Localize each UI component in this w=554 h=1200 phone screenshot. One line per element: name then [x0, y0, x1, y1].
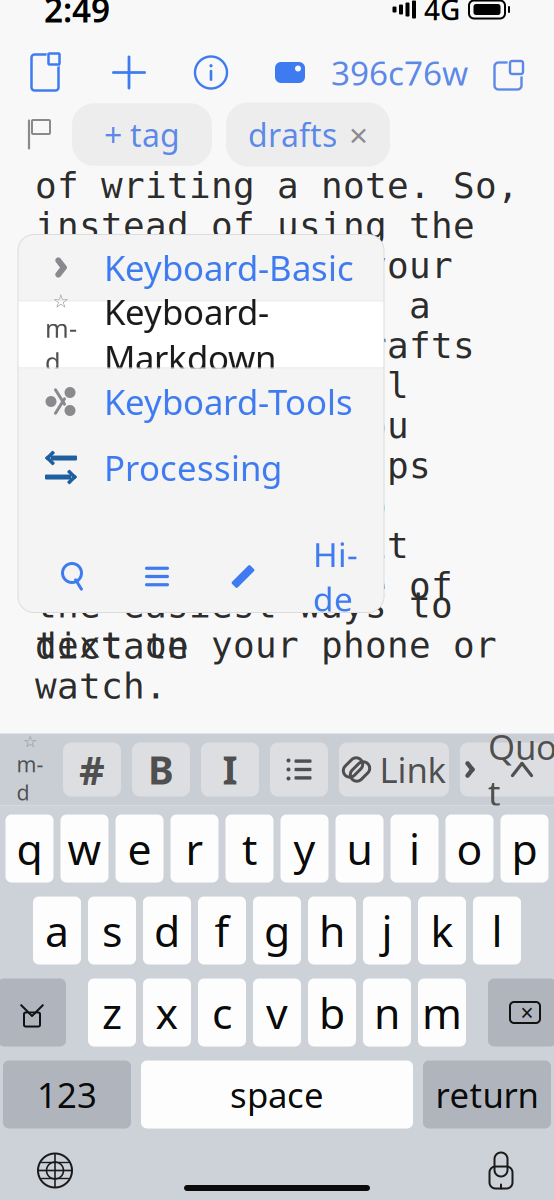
button[interactable]: Heading: [63, 742, 121, 796]
button[interactable]: return: [423, 1060, 551, 1128]
button[interactable]: z: [88, 978, 136, 1046]
staticText: traps: [35, 445, 431, 486]
button[interactable]: Add: [102, 46, 156, 98]
button[interactable]: Quote: [460, 742, 554, 796]
button[interactable]: x: [143, 978, 191, 1046]
staticText: Hide: [313, 532, 358, 621]
button[interactable]: ☆: [18, 301, 384, 368]
button[interactable]: f: [198, 896, 246, 964]
button[interactable]: e: [115, 814, 163, 882]
staticText: g: [264, 902, 290, 959]
staticText: a: [45, 902, 69, 959]
button[interactable]: space: [141, 1060, 413, 1128]
button[interactable]: g: [253, 896, 301, 964]
button[interactable]: m: [418, 978, 466, 1046]
staticText: z: [102, 984, 122, 1041]
button[interactable]: List: [114, 548, 200, 604]
staticText: n: [374, 984, 400, 1041]
button[interactable]: Bulleted list: [270, 742, 328, 796]
button[interactable]: Dictate: [484, 1143, 554, 1197]
staticText: d: [154, 902, 180, 959]
button[interactable]: p: [500, 814, 548, 882]
button[interactable]: y: [280, 814, 328, 882]
button[interactable]: Flag: [20, 117, 58, 151]
button[interactable]: c: [198, 978, 246, 1046]
staticText: th it: [35, 525, 409, 566]
staticText: on your: [35, 245, 453, 286]
staticText: ×: [520, 997, 533, 1027]
staticText: e: [127, 820, 151, 877]
button[interactable]: Tags: [264, 46, 316, 98]
staticText: text on your phone or watch.: [35, 625, 497, 706]
button[interactable]: i: [390, 814, 438, 882]
button[interactable]: r: [170, 814, 218, 882]
button[interactable]: Delete: [488, 978, 554, 1046]
button[interactable]: + tag: [72, 103, 212, 166]
staticText: v: [266, 984, 288, 1041]
staticText: space: [230, 1071, 324, 1117]
staticText: Processing: [104, 444, 282, 490]
staticText: j: [381, 902, 392, 959]
staticText: I: [222, 744, 237, 795]
staticText: + tag: [104, 113, 180, 156]
staticText: 2:49: [44, 0, 110, 32]
button[interactable]: Keyboard-Basic: [18, 234, 384, 301]
button[interactable]: b: [308, 978, 356, 1046]
staticText: open a: [35, 285, 431, 326]
staticText: return: [435, 1071, 538, 1117]
button[interactable]: Link: [339, 742, 449, 796]
button[interactable]: Italic: [201, 742, 259, 796]
staticText: c: [212, 984, 232, 1041]
staticText: Quot: [488, 723, 554, 816]
staticText: ×: [349, 112, 368, 157]
staticText: f: [214, 902, 229, 959]
staticText: Keyboard-Basic: [104, 244, 354, 290]
button[interactable]: Search: [34, 548, 114, 604]
button[interactable]: d: [143, 896, 191, 964]
button[interactable]: l: [473, 896, 521, 964]
button[interactable]: Dismiss keyboard: [490, 733, 554, 805]
staticText: one of: [35, 565, 453, 606]
button[interactable]: Shift: [0, 978, 66, 1046]
button[interactable]: drafts: [226, 102, 390, 167]
button[interactable]: Keyboard-Tools: [18, 368, 384, 434]
staticText: B: [148, 744, 174, 795]
button[interactable]: 123: [3, 1060, 131, 1128]
button[interactable]: Edit: [200, 548, 286, 604]
button[interactable]: k: [418, 896, 466, 964]
staticText: ☆: [23, 732, 37, 751]
button[interactable]: w: [60, 814, 108, 882]
button[interactable]: s: [88, 896, 136, 964]
staticText: t: [242, 820, 257, 877]
staticText: will: [35, 365, 409, 406]
button[interactable]: j: [363, 896, 411, 964]
button[interactable]: Info: [184, 46, 238, 98]
button[interactable]: h: [308, 896, 356, 964]
button[interactable]: o: [445, 814, 493, 882]
button[interactable]: u: [335, 814, 383, 882]
button[interactable]: a: [33, 896, 81, 964]
staticText: q: [16, 820, 42, 877]
staticText: drafts: [248, 113, 337, 156]
button[interactable]: Processing: [18, 434, 384, 500]
staticText: Keyboard-Markdown: [104, 288, 276, 381]
staticText: of writing a note. So,: [35, 165, 519, 206]
button[interactable]: Markdown keyboard: [8, 742, 52, 796]
staticText: 123: [37, 1071, 97, 1117]
button[interactable]: Hide: [303, 548, 368, 604]
staticText: u: [346, 820, 372, 877]
staticText: p: [511, 820, 537, 877]
button[interactable]: t: [225, 814, 273, 882]
staticText: 396c76w: [331, 50, 468, 95]
button[interactable]: Next keyboard: [0, 1141, 74, 1199]
staticText: w: [67, 820, 101, 877]
button[interactable]: New Draft: [20, 46, 70, 98]
button[interactable]: v: [253, 978, 301, 1046]
button[interactable]: q: [5, 814, 53, 882]
button[interactable]: Bold: [132, 742, 190, 796]
button[interactable]: n: [363, 978, 411, 1046]
staticText: Link: [379, 746, 446, 792]
button[interactable]: Open in new window: [488, 47, 534, 97]
button[interactable]: 396c76w: [331, 44, 468, 101]
staticText: md: [16, 750, 43, 806]
